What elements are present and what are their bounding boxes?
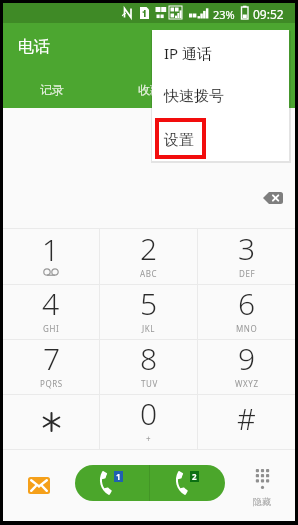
- staticText: GHI: [43, 323, 60, 334]
- button[interactable]: 4: [3, 285, 99, 339]
- button[interactable]: 2: [100, 229, 197, 284]
- staticText: JKL: [142, 323, 156, 334]
- button[interactable]: 9: [198, 340, 295, 394]
- staticText: 0: [140, 393, 158, 434]
- staticText: 电话: [18, 37, 50, 57]
- staticText: 快速拨号: [164, 87, 224, 106]
- staticText: PQRS: [40, 378, 63, 389]
- staticText: DEF: [239, 268, 256, 279]
- staticText: 23%: [213, 7, 235, 22]
- staticText: 1: [116, 471, 121, 482]
- staticText: 2: [140, 228, 158, 269]
- staticText: 设置: [164, 131, 194, 150]
- staticText: 3: [238, 228, 256, 269]
- button[interactable]: 快速拨号: [152, 75, 289, 117]
- staticText: MNO: [236, 323, 258, 334]
- button[interactable]: 设置: [152, 119, 289, 161]
- button[interactable]: 8: [100, 340, 197, 394]
- button[interactable]: 6: [198, 285, 295, 339]
- staticText: 记录: [40, 82, 64, 97]
- button[interactable]: Call with SIM 1: [75, 465, 149, 501]
- button[interactable]: 收藏: [101, 71, 198, 108]
- staticText: ABC: [140, 268, 158, 279]
- button[interactable]: 联系人: [198, 71, 295, 108]
- button[interactable]: Call with SIM 2: [150, 465, 225, 501]
- staticText: 收藏: [138, 82, 162, 97]
- button[interactable]: 1: [3, 229, 99, 284]
- staticText: 6: [238, 283, 256, 324]
- button[interactable]: Backspace: [258, 185, 288, 211]
- button[interactable]: IP 通话: [152, 32, 289, 74]
- staticText: 2: [192, 471, 197, 482]
- button[interactable]: 7: [3, 340, 99, 394]
- button[interactable]: Messages: [22, 469, 55, 501]
- staticText: 1: [42, 229, 60, 270]
- staticText: 9: [238, 338, 256, 379]
- staticText: IP 通话: [164, 43, 213, 63]
- staticText: WXYZ: [235, 378, 259, 389]
- staticText: #: [237, 399, 256, 438]
- staticText: +: [146, 433, 152, 444]
- staticText: TUV: [141, 378, 158, 389]
- button[interactable]: 0: [100, 395, 197, 449]
- button[interactable]: 3: [198, 229, 295, 284]
- button[interactable]: 记录: [3, 71, 101, 108]
- staticText: 7: [43, 338, 61, 379]
- staticText: 4: [42, 283, 60, 324]
- staticText: 5: [140, 283, 158, 324]
- button[interactable]: 隐藏: [238, 464, 286, 512]
- button[interactable]: [3, 395, 99, 449]
- staticText: 隐藏: [253, 496, 271, 507]
- staticText: 8: [140, 338, 158, 379]
- button[interactable]: 5: [100, 285, 197, 339]
- button[interactable]: #: [198, 395, 295, 449]
- staticText: 09:52: [253, 6, 284, 22]
